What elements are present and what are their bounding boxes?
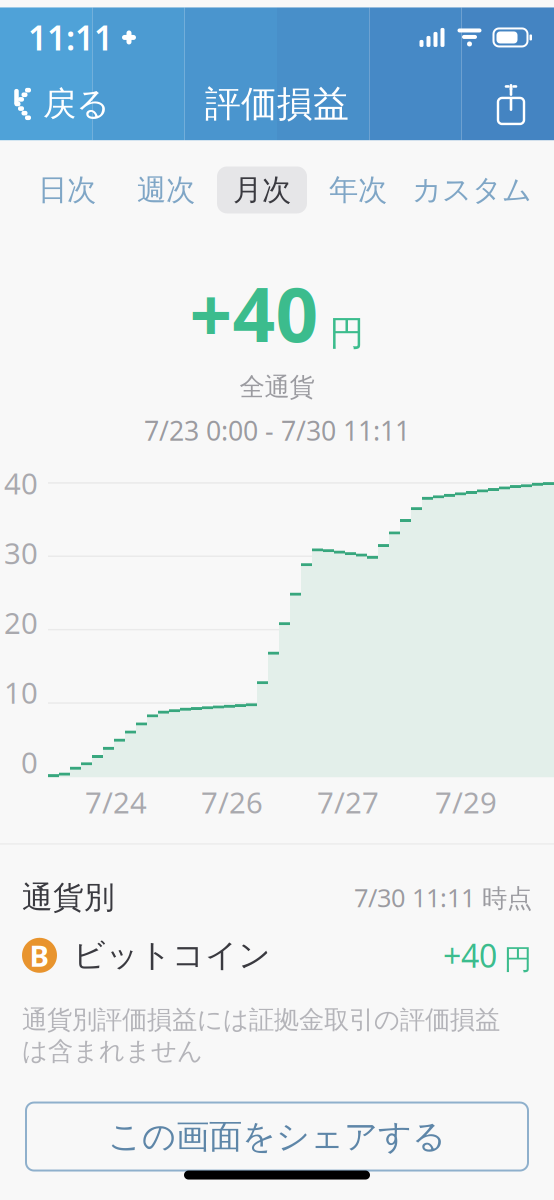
staticText: B [29, 936, 49, 975]
staticText: 30 [4, 533, 38, 572]
button[interactable]: この画面をシェアする [26, 1102, 528, 1170]
staticText: 通貨別評価損益には証拠金取引の評価損益は含まれません [22, 1004, 500, 1066]
staticText: 7/27 [317, 783, 379, 822]
staticText: 7/24 [85, 783, 147, 822]
staticText: この画面をシェアする [108, 1116, 446, 1157]
staticText: +40 [443, 934, 497, 977]
button[interactable]: 週次 [115, 166, 217, 213]
staticText: カスタム [412, 172, 532, 208]
staticText: 月次 [233, 172, 291, 208]
staticText: 週次 [137, 172, 195, 208]
staticText: 11:11 [28, 15, 113, 60]
staticText: 戻る [43, 83, 110, 124]
staticText: 7/30 11:11 時点 [354, 881, 532, 914]
button[interactable]: Share [482, 67, 540, 140]
button[interactable]: 日次 [19, 166, 115, 213]
staticText: 7/23 0:00 - 7/30 11:11 [144, 413, 410, 448]
button[interactable]: 戻る [0, 67, 126, 140]
button[interactable]: B [0, 924, 554, 986]
staticText: 40 [4, 464, 38, 503]
staticText: 円 [504, 942, 532, 977]
staticText: 10 [4, 673, 38, 712]
staticText: 円 [329, 312, 364, 355]
staticText: 日次 [38, 172, 96, 208]
button[interactable]: 年次 [307, 166, 409, 213]
button[interactable]: 月次 [217, 166, 307, 213]
button[interactable]: カスタム [409, 166, 535, 213]
staticText: 20 [4, 603, 38, 642]
staticText: 7/29 [435, 783, 497, 822]
staticText: 年次 [329, 172, 387, 208]
staticText: +40 [189, 263, 318, 363]
staticText: 評価損益 [205, 82, 349, 126]
staticText: 0 [21, 743, 38, 782]
staticText: ビットコイン [73, 936, 271, 975]
staticText: 全通貨 [239, 372, 314, 403]
staticText: 7/26 [201, 783, 263, 822]
staticText: 通貨別 [22, 879, 115, 916]
